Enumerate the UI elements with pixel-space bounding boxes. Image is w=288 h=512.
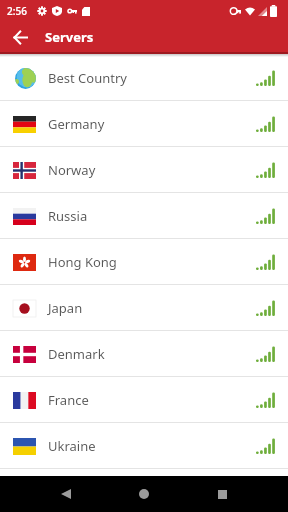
staticText: Norway [48,161,96,179]
staticText: Servers [45,28,94,46]
staticText: 2:56 [7,4,27,18]
button[interactable]: Germany [0,101,288,147]
staticText: Germany [48,115,105,133]
button[interactable]: Hong Kong [0,239,288,285]
staticText: Japan [48,299,83,317]
button[interactable] [4,22,36,52]
button[interactable]: Russia [0,193,288,239]
button[interactable]: Denmark [0,331,288,377]
button[interactable]: Ukraine [0,423,288,469]
staticText: France [48,391,89,409]
staticText: Denmark [48,345,105,363]
staticText: Best Country [48,69,127,87]
staticText: Hong Kong [48,253,117,271]
button[interactable]: Japan [0,285,288,331]
button[interactable] [36,476,96,512]
staticText: Russia [48,207,88,225]
button[interactable]: Norway [0,147,288,193]
staticText: Ukraine [48,437,96,455]
button[interactable]: France [0,377,288,423]
button[interactable]: Best Country [0,55,288,101]
button[interactable] [114,476,174,512]
button[interactable] [192,476,252,512]
